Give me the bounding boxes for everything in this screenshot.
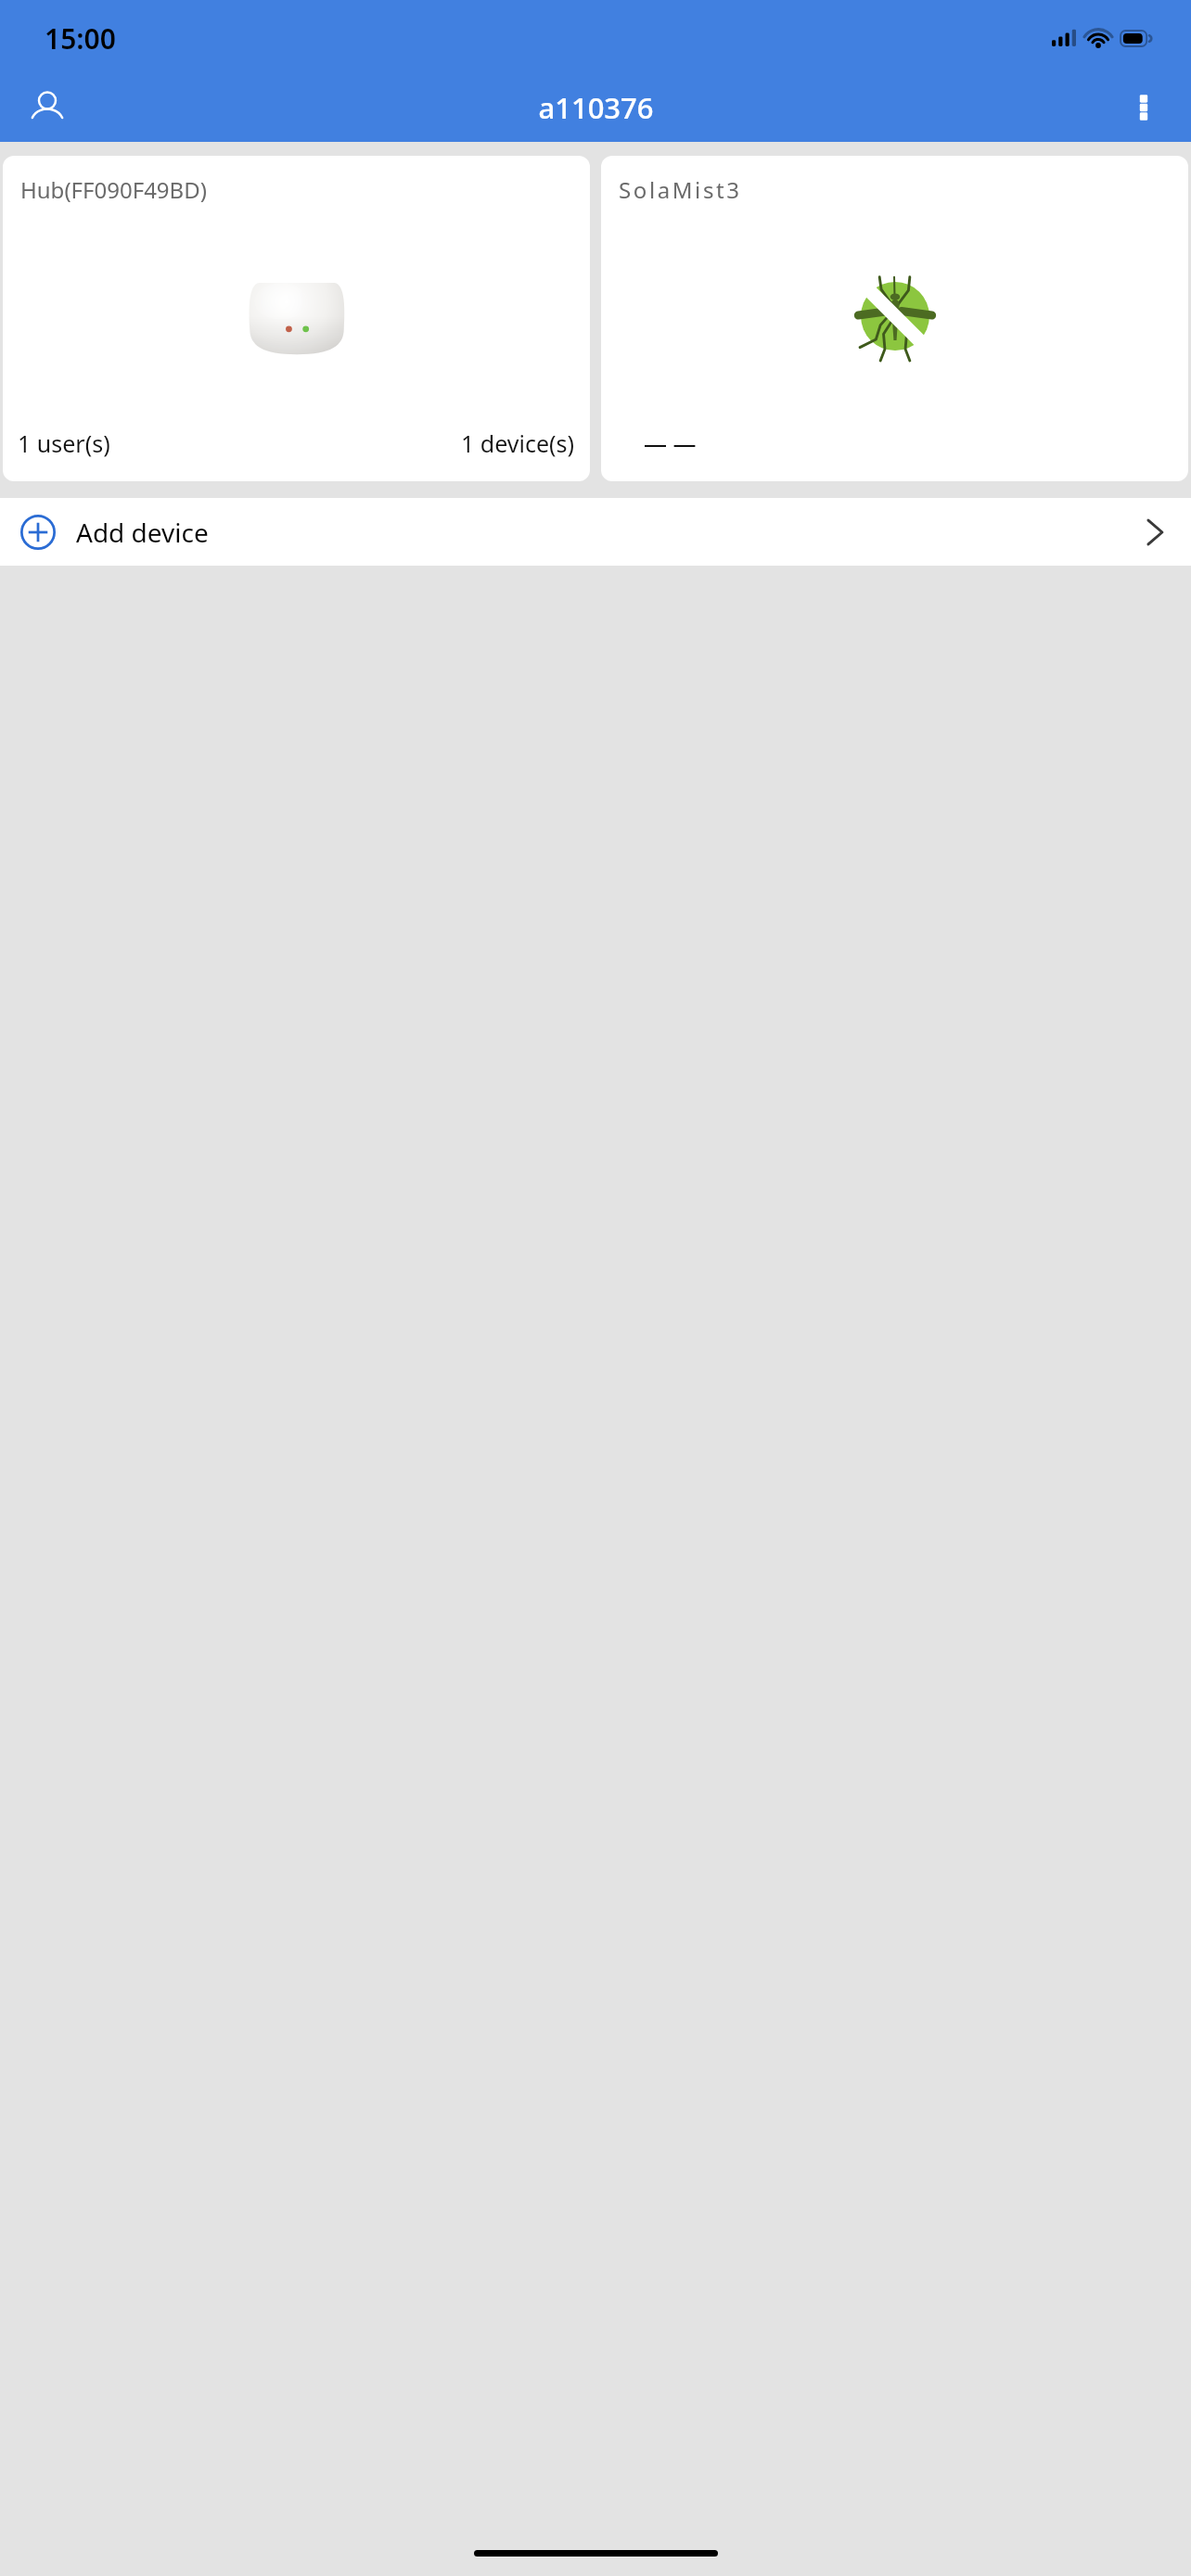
staticText: 15:00 (45, 19, 116, 57)
button[interactable]: Account (20, 81, 74, 134)
staticText: Hub(FF090F49BD) (20, 174, 207, 205)
staticText: — — (644, 427, 697, 459)
button[interactable]: Hub(FF090F49BD) (3, 156, 590, 481)
staticText: Add device (76, 515, 209, 550)
button[interactable]: Add device (0, 498, 1191, 566)
staticText: a110376 (538, 88, 654, 127)
staticText: 1 user(s) (18, 427, 110, 459)
button[interactable]: SolaMist3 (601, 156, 1188, 481)
staticText: 1 device(s) (461, 427, 575, 459)
staticText: SolaMist3 (619, 174, 742, 205)
button[interactable]: More options (1117, 81, 1171, 134)
